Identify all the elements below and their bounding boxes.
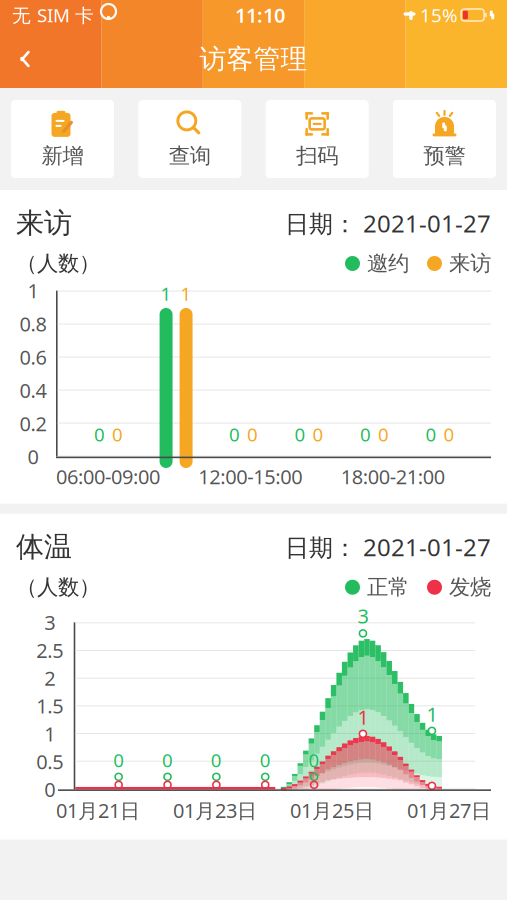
staticText: 1 <box>27 277 38 304</box>
button[interactable]: 预警 <box>393 100 496 178</box>
staticText: 3 <box>357 602 368 629</box>
staticText: 3 <box>44 609 55 636</box>
staticText: 0 <box>247 422 258 447</box>
staticText: 0.5 <box>36 748 63 775</box>
staticText: 01月25日 <box>290 797 374 823</box>
button[interactable]: 查询 <box>138 100 241 178</box>
staticText: 0 <box>113 748 124 772</box>
staticText: 01月23日 <box>173 797 257 823</box>
staticText: 01月21日 <box>56 797 140 823</box>
staticText: 扫码 <box>296 143 338 169</box>
staticText: 体温 <box>16 530 72 564</box>
staticText: 来访 <box>449 250 491 277</box>
staticText: 预警 <box>423 143 465 169</box>
staticText: 日期： 2021-01-27 <box>285 531 491 563</box>
staticText: 0 <box>27 443 38 470</box>
staticText: 0 <box>112 422 123 447</box>
staticText: （人数） <box>16 574 100 600</box>
staticText: 01月27日 <box>407 797 491 823</box>
staticText: 0 <box>162 748 173 772</box>
staticText: 0.6 <box>19 344 46 370</box>
staticText: 0 <box>211 748 222 772</box>
staticText: 0 <box>260 748 271 772</box>
staticText: 1 <box>426 701 437 727</box>
staticText: 1 <box>161 281 172 306</box>
staticText: 发烧 <box>449 574 491 600</box>
staticText: 2 <box>44 665 55 691</box>
button[interactable]: 扫码 <box>266 100 369 178</box>
staticText: 邀约 <box>367 250 409 277</box>
staticText: 新增 <box>41 143 83 169</box>
staticText: （人数） <box>16 250 100 277</box>
staticText: 0.4 <box>19 377 46 403</box>
staticText: 1 <box>181 281 192 306</box>
staticText: 0 <box>360 422 371 447</box>
staticText: 12:00-15:00 <box>198 463 302 490</box>
staticText: 1 <box>44 720 55 747</box>
staticText: 0 <box>312 422 323 447</box>
staticText: 正常 <box>367 574 409 600</box>
staticText: 1.5 <box>36 693 63 719</box>
staticText: 0 <box>294 422 305 447</box>
staticText: 2.5 <box>36 637 63 663</box>
staticText: 0 <box>44 776 55 803</box>
staticText: 日期： 2021-01-27 <box>285 207 491 239</box>
staticText: 0 <box>425 422 436 447</box>
staticText: 1 <box>357 704 368 730</box>
staticText: 无 SIM 卡 <box>12 3 94 27</box>
button[interactable]: 返回 <box>0 35 50 83</box>
staticText: 0 <box>309 748 320 772</box>
staticText: 0 <box>443 422 454 447</box>
staticText: 0 <box>94 422 105 447</box>
staticText: 15% <box>420 3 458 27</box>
staticText: 0 <box>378 422 389 447</box>
staticText: 11:10 <box>235 2 285 28</box>
button[interactable]: 新增 <box>11 100 114 178</box>
staticText: 0 <box>229 422 240 447</box>
staticText: 0.8 <box>19 310 46 337</box>
staticText: 查询 <box>169 143 211 169</box>
staticText: 18:00-21:00 <box>341 463 445 490</box>
staticText: 访客管理 <box>199 43 307 75</box>
staticText: 来访 <box>16 206 72 240</box>
staticText: 06:00-09:00 <box>56 463 160 490</box>
staticText: 0.2 <box>19 410 46 437</box>
